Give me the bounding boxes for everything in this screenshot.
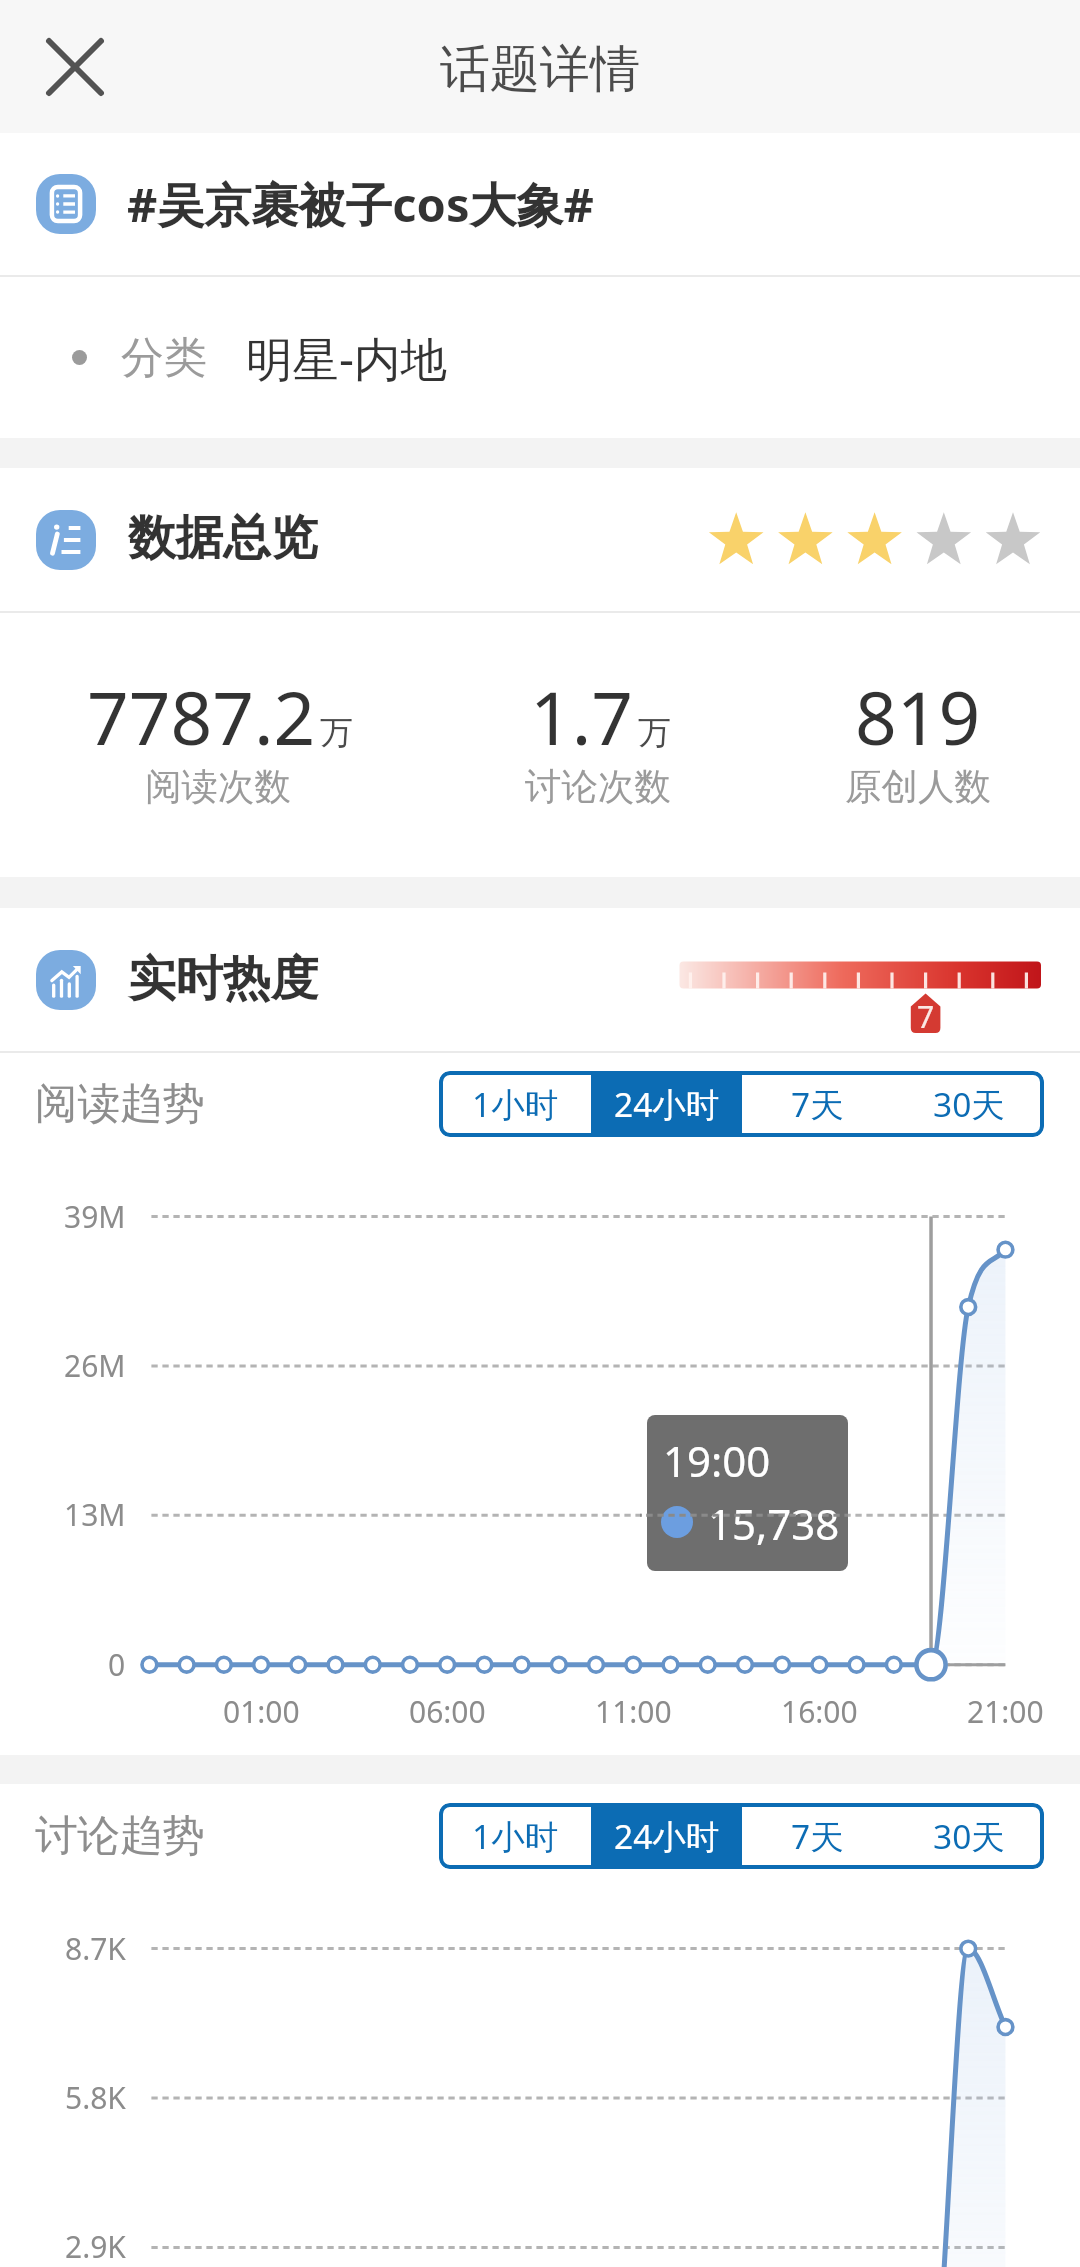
staticText: 16:00 bbox=[781, 1691, 858, 1732]
button[interactable]: #吴京裹被子cos大象# bbox=[0, 133, 1080, 275]
staticText: 1.7 bbox=[530, 667, 634, 766]
staticText: 7天 bbox=[791, 1813, 844, 1859]
staticText: 8.7K bbox=[65, 1928, 126, 1969]
staticText: 7天 bbox=[791, 1081, 844, 1127]
staticText: 01:00 bbox=[223, 1691, 300, 1732]
staticText: 15,738 bbox=[708, 1495, 840, 1552]
staticText: 阅读趋势 bbox=[35, 1077, 205, 1131]
staticText: 24小时 bbox=[614, 1813, 720, 1859]
button[interactable]: 1小时 bbox=[439, 1071, 591, 1137]
staticText: 06:00 bbox=[409, 1691, 486, 1732]
staticText: 30天 bbox=[933, 1813, 1005, 1859]
staticText: 阅读次数 bbox=[145, 764, 291, 810]
staticText: 讨论趋势 bbox=[35, 1809, 205, 1863]
staticText: 39M bbox=[64, 1196, 126, 1237]
button[interactable]: Close bbox=[25, 17, 125, 117]
staticText: 19:00 bbox=[663, 1432, 771, 1489]
staticText: 11:00 bbox=[595, 1691, 672, 1732]
button[interactable]: 30天 bbox=[893, 1071, 1044, 1137]
staticText: 明星-内地 bbox=[246, 326, 447, 390]
staticText: 万 bbox=[638, 712, 671, 754]
staticText: 7787.2 bbox=[87, 667, 316, 766]
staticText: 2.9K bbox=[65, 2226, 126, 2267]
staticText: #吴京裹被子cos大象# bbox=[127, 172, 594, 236]
staticText: 24小时 bbox=[614, 1081, 720, 1127]
staticText: 26M bbox=[64, 1345, 126, 1386]
button[interactable]: 7天 bbox=[742, 1071, 893, 1137]
button[interactable]: 30天 bbox=[893, 1803, 1044, 1869]
staticText: 819 bbox=[855, 667, 981, 766]
staticText: 1小时 bbox=[472, 1081, 559, 1127]
staticText: 讨论次数 bbox=[525, 764, 671, 810]
staticText: 原创人数 bbox=[845, 764, 991, 810]
staticText: 30天 bbox=[933, 1081, 1005, 1127]
button[interactable]: 分类 bbox=[0, 277, 1080, 438]
staticText: 话题详情 bbox=[440, 38, 640, 101]
staticText: 数据总览 bbox=[128, 508, 318, 568]
staticText: 5.8K bbox=[65, 2077, 126, 2118]
staticText: 分类 bbox=[121, 331, 207, 385]
staticText: 13M bbox=[64, 1494, 126, 1535]
staticText: 1小时 bbox=[472, 1813, 559, 1859]
staticText: 万 bbox=[320, 712, 353, 754]
staticText: 实时热度 bbox=[128, 949, 318, 1009]
staticText: 21:00 bbox=[967, 1691, 1044, 1732]
button[interactable]: 24小时 bbox=[591, 1071, 742, 1137]
button[interactable]: 1小时 bbox=[439, 1803, 591, 1869]
staticText: 0 bbox=[108, 1644, 126, 1685]
button[interactable]: 7天 bbox=[742, 1803, 893, 1869]
button[interactable]: 24小时 bbox=[591, 1803, 742, 1869]
staticText: 7 bbox=[917, 996, 935, 1034]
